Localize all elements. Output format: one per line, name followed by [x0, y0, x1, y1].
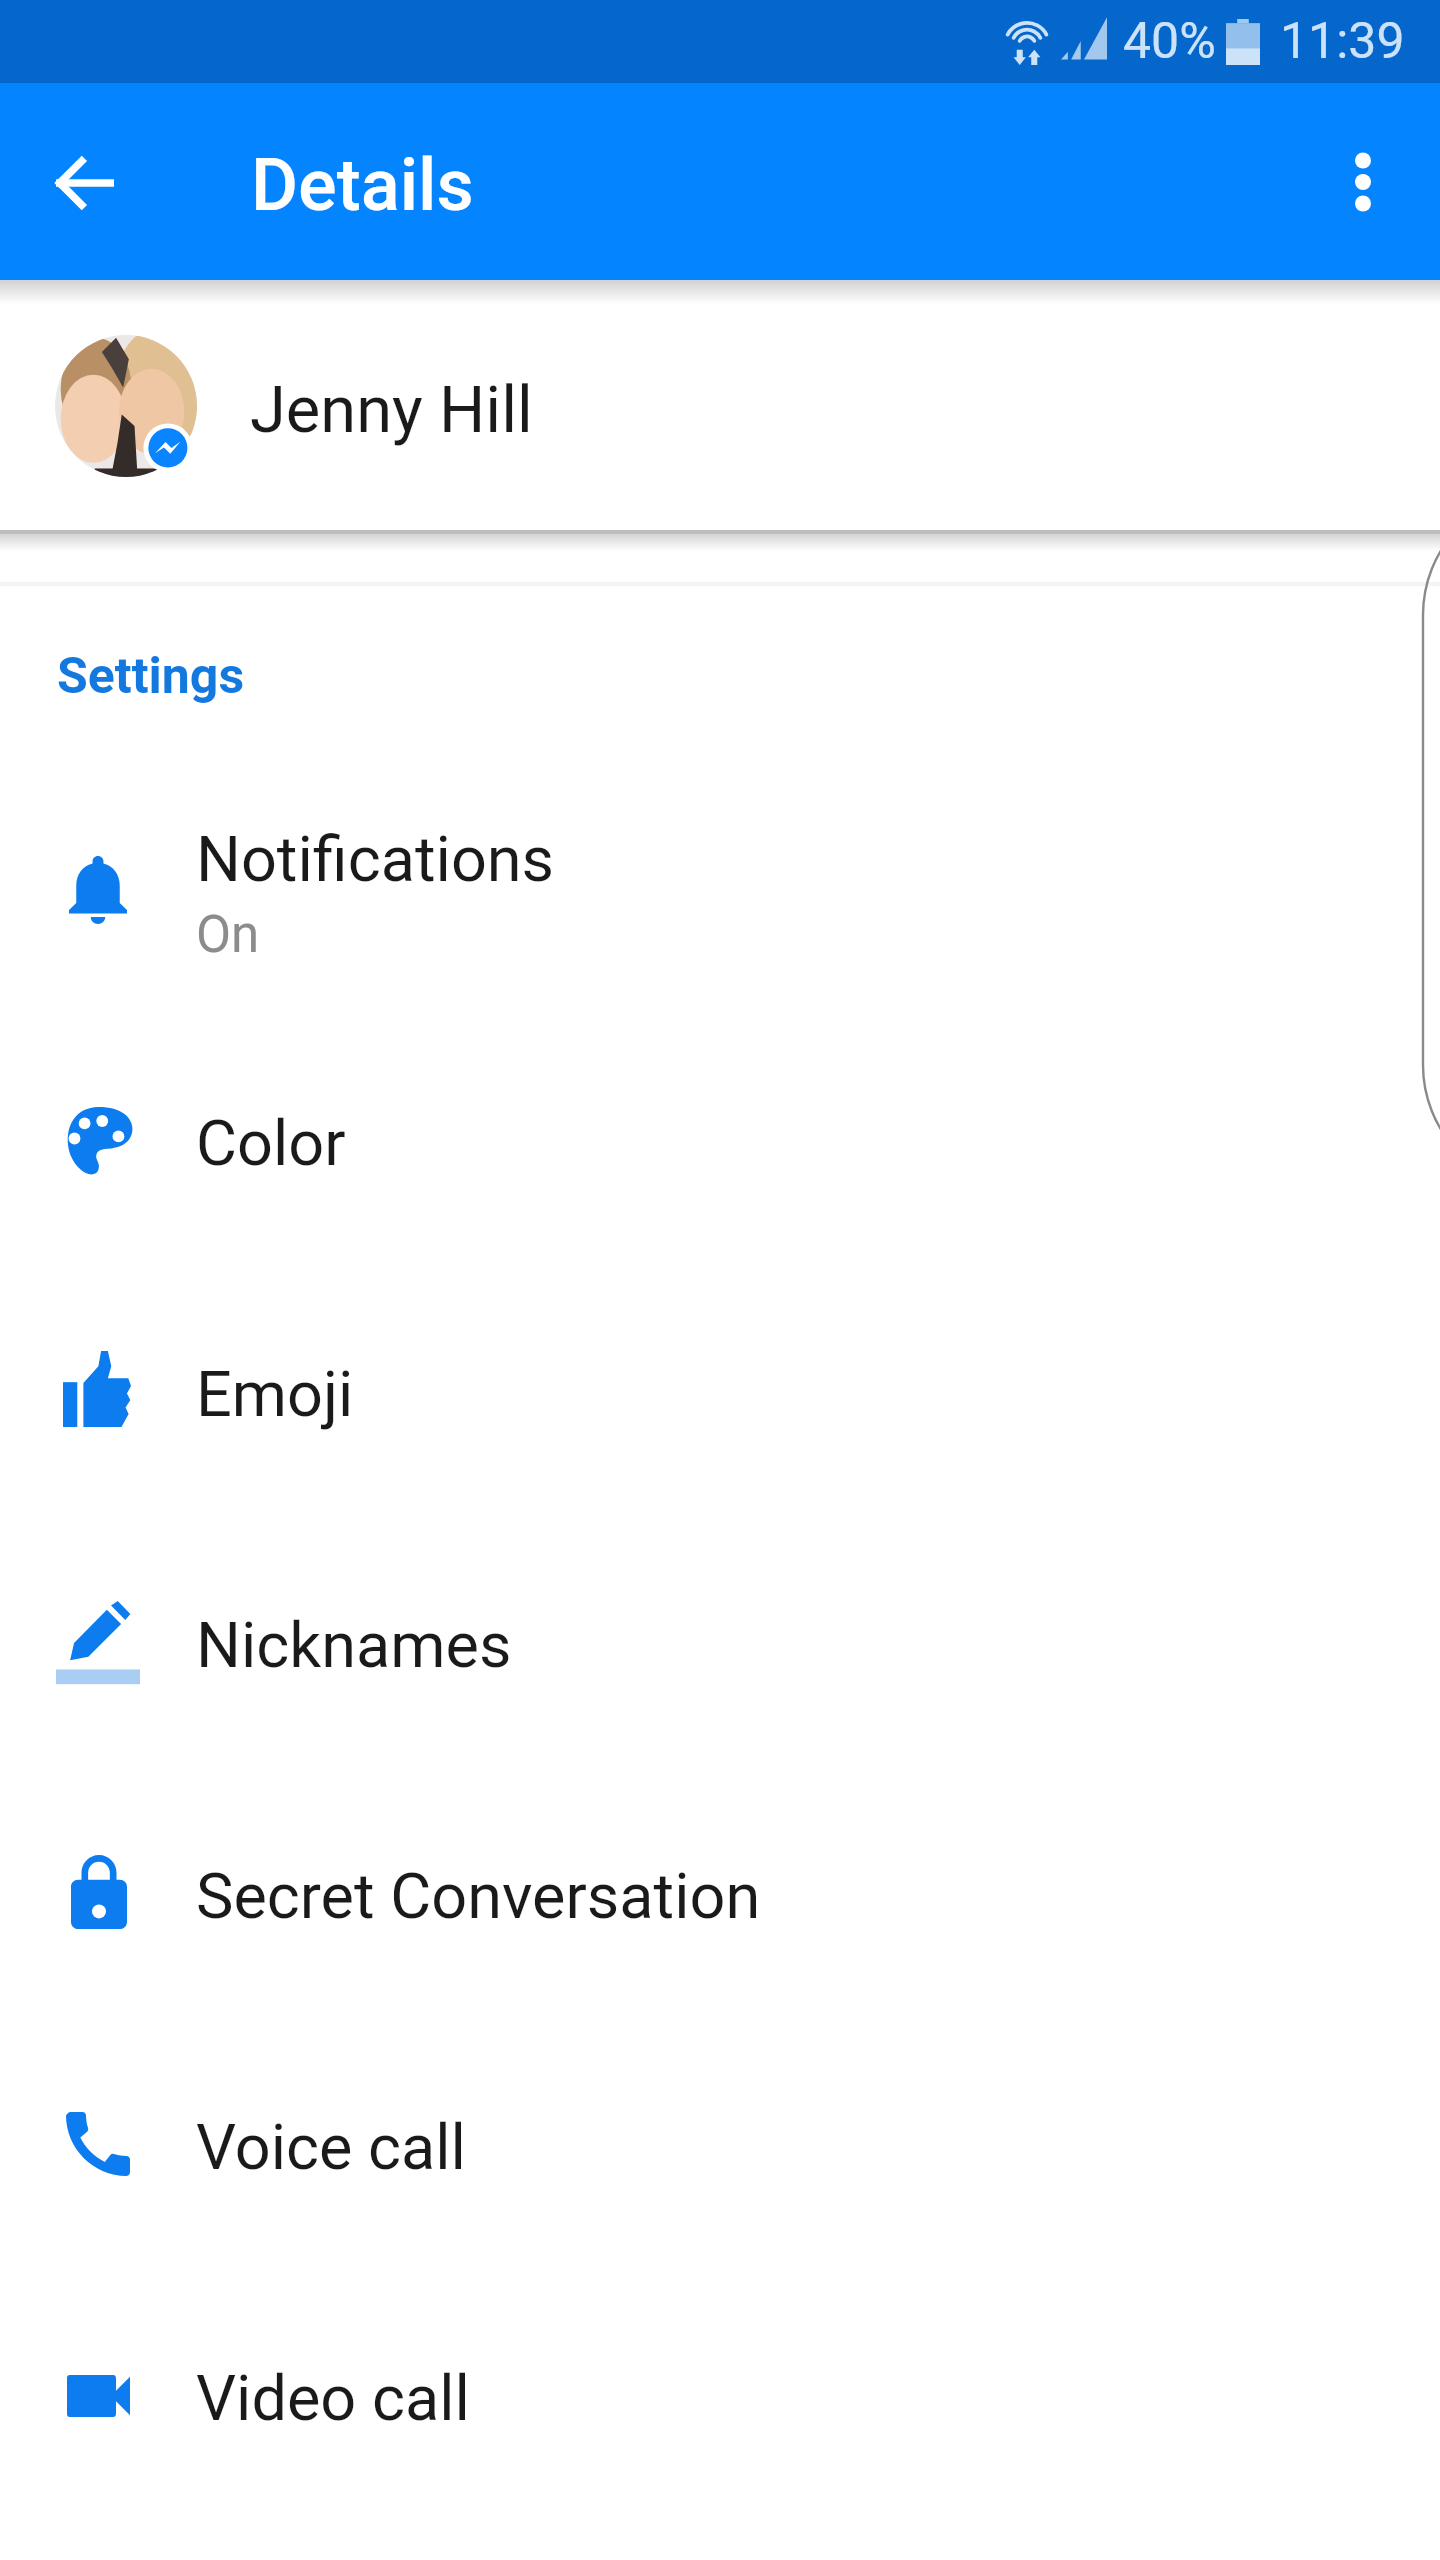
staticText: Secret Conversation — [196, 1860, 761, 1934]
staticText: On — [196, 905, 260, 965]
staticText: Nicknames — [196, 1609, 512, 1683]
staticText: Jenny Hill — [250, 372, 533, 448]
staticText: 40% — [1123, 12, 1216, 71]
button[interactable]: More options — [1311, 130, 1415, 234]
staticText: Voice call — [196, 2111, 466, 2185]
staticText: 11:39 — [1280, 12, 1405, 71]
button[interactable]: Secret Conversation — [0, 1771, 1440, 2022]
staticText: Settings — [57, 647, 245, 706]
button[interactable]: Nicknames — [0, 1520, 1440, 1771]
button[interactable]: Jenny Hill — [0, 280, 1440, 530]
button[interactable]: Back — [31, 131, 135, 235]
staticText: Video call — [196, 2362, 470, 2436]
staticText: Details — [251, 143, 474, 227]
button[interactable]: Color — [0, 1018, 1440, 1269]
button[interactable]: Emoji — [0, 1269, 1440, 1520]
button[interactable]: Notifications — [0, 767, 1440, 1018]
staticText: Color — [196, 1107, 346, 1181]
button[interactable]: Voice call — [0, 2022, 1440, 2273]
button[interactable]: Video call — [0, 2273, 1440, 2524]
staticText: Emoji — [196, 1358, 354, 1432]
staticText: Notifications — [196, 823, 555, 897]
